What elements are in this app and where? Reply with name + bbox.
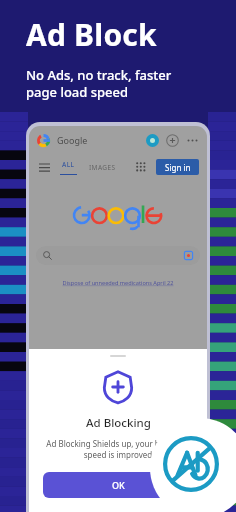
button[interactable]: ALL xyxy=(60,160,77,175)
staticText: Google xyxy=(57,134,88,146)
button[interactable]: OK xyxy=(43,472,193,498)
staticText: Ad Block xyxy=(26,14,157,55)
staticText: Ad Blocking Shields up, your browsing sp… xyxy=(46,438,190,460)
button[interactable]: Add tab xyxy=(166,134,179,147)
staticText: No Ads, no track, faster page load speed xyxy=(26,66,172,101)
button[interactable]: Sign in xyxy=(156,159,199,175)
button[interactable]: More options xyxy=(186,134,199,147)
staticText: OK xyxy=(112,479,125,491)
button[interactable]: Menu xyxy=(37,160,51,174)
staticText: ALL xyxy=(62,160,75,169)
staticText: Sign in xyxy=(165,162,191,173)
button[interactable]: Google apps xyxy=(134,160,148,174)
staticText: Ad Blocking xyxy=(86,415,151,431)
button[interactable]: Dispose of unneeded medications April 22 xyxy=(29,279,207,287)
button[interactable]: Ad Block logo xyxy=(150,418,236,512)
button[interactable] xyxy=(36,246,200,265)
button[interactable]: Account xyxy=(146,134,159,147)
button[interactable]: IMAGES xyxy=(89,163,116,172)
